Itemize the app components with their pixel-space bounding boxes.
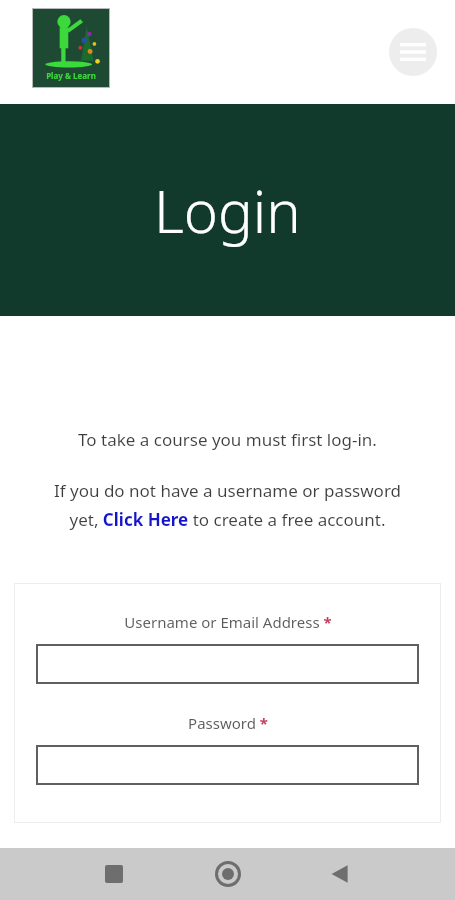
button[interactable]: Back bbox=[318, 852, 362, 896]
button[interactable]: Recent apps bbox=[92, 852, 136, 896]
button[interactable]: Play and Learn home bbox=[32, 8, 110, 88]
staticText: Play & Learn bbox=[46, 70, 96, 81]
staticText: Login bbox=[154, 171, 301, 250]
button[interactable]: Home bbox=[206, 852, 250, 896]
button[interactable]: Username or email address bbox=[36, 644, 419, 684]
button[interactable]: Menu bbox=[389, 28, 437, 76]
button[interactable]: Password bbox=[36, 745, 419, 785]
staticText: To take a course you must first log-in. bbox=[0, 428, 455, 451]
button[interactable]: If you do not have a username or passwor… bbox=[0, 479, 455, 531]
staticText: Username or Email Address * bbox=[124, 612, 332, 632]
staticText: Password * bbox=[188, 713, 268, 733]
